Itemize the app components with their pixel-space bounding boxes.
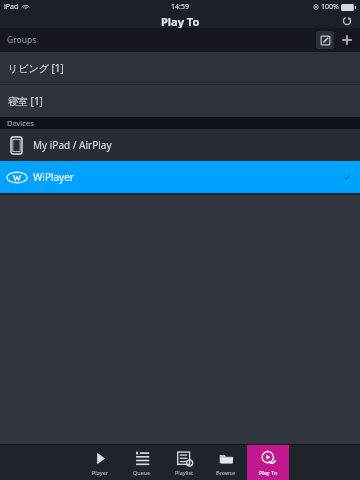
staticText: Queue xyxy=(133,469,151,476)
staticText: Play To xyxy=(259,469,278,476)
staticText: Play To xyxy=(161,14,200,28)
button[interactable]: WiPlayer xyxy=(0,161,360,193)
button[interactable]: Play To xyxy=(247,445,289,480)
button[interactable]: リビング [1] xyxy=(0,52,360,84)
staticText: WiPlayer xyxy=(33,170,74,184)
staticText: 100% xyxy=(321,2,339,12)
staticText: Groups xyxy=(7,34,37,46)
button[interactable]: Browse xyxy=(205,445,247,480)
staticText: My iPad / AirPlay xyxy=(33,138,112,152)
button[interactable]: Player xyxy=(79,445,121,480)
button[interactable]: 寝室 [1] xyxy=(0,85,360,117)
staticText: Browse xyxy=(216,469,236,476)
button[interactable]: Queue xyxy=(121,445,163,480)
staticText: iPad xyxy=(4,2,19,12)
button[interactable]: Add group xyxy=(338,31,356,49)
staticText: リビング [1] xyxy=(8,61,64,75)
staticText: Playlist xyxy=(175,469,194,476)
button[interactable]: My iPad / AirPlay xyxy=(0,129,360,161)
staticText: Devices xyxy=(7,118,34,128)
button[interactable]: Edit groups xyxy=(316,31,334,49)
button[interactable]: Playlist xyxy=(163,445,205,480)
button[interactable]: Refresh xyxy=(340,14,354,28)
staticText: Player xyxy=(92,469,109,476)
staticText: 寝室 [1] xyxy=(8,94,43,108)
staticText: 14:59 xyxy=(171,2,189,12)
